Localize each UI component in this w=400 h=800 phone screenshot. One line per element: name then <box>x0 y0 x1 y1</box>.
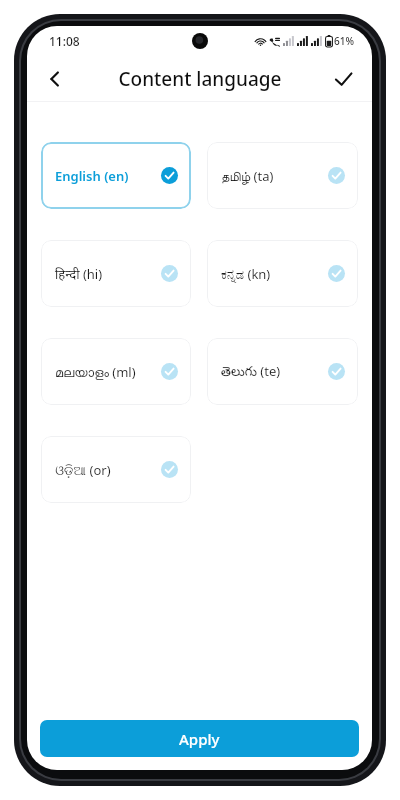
button[interactable]: മലയാളം (ml) <box>41 338 191 405</box>
button[interactable]: தமிழ் (ta) <box>207 142 358 209</box>
staticText: 11:08 <box>49 33 80 49</box>
button[interactable]: English (en) <box>41 142 191 209</box>
button[interactable]: ಕನ್ನಡ (kn) <box>207 240 358 307</box>
button[interactable]: Apply <box>40 720 359 757</box>
staticText: ಕನ್ನಡ (kn) <box>221 265 324 283</box>
staticText: ଓଡ଼ିଆ (or) <box>55 461 157 479</box>
staticText: தமிழ் (ta) <box>221 167 324 185</box>
button[interactable]: Confirm <box>323 59 363 99</box>
staticText: हिन्दी (hi) <box>55 265 157 283</box>
button[interactable]: हिन्दी (hi) <box>41 240 191 307</box>
button[interactable]: తెలుగు (te) <box>207 338 358 405</box>
button[interactable]: ଓଡ଼ିଆ (or) <box>41 436 191 503</box>
button[interactable]: Back <box>35 59 75 99</box>
staticText: Apply <box>179 729 220 749</box>
staticText: മലയാളം (ml) <box>55 363 157 381</box>
staticText: Content language <box>118 66 282 92</box>
staticText: తెలుగు (te) <box>221 362 324 382</box>
staticText: English (en) <box>55 167 157 185</box>
staticText: 61% <box>334 34 354 48</box>
